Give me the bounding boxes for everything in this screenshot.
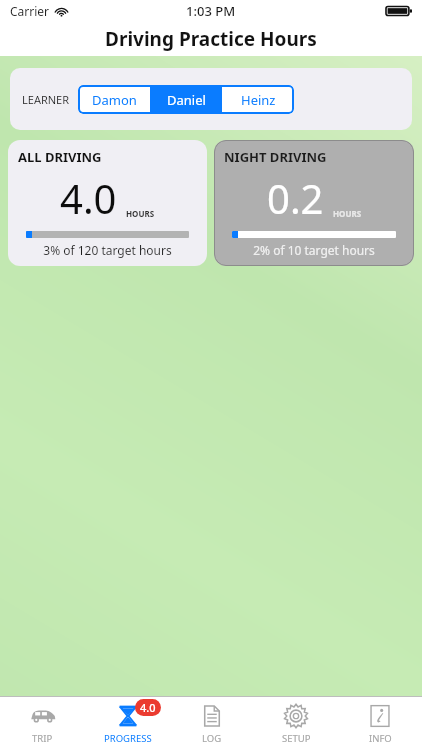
button[interactable]: Heinz — [222, 85, 294, 114]
staticText: 4.0 — [60, 171, 117, 225]
staticText: 2% of 10 target hours — [224, 242, 404, 258]
staticText: SETUP — [282, 732, 311, 745]
button[interactable]: Daniel — [150, 85, 222, 114]
button[interactable]: Setup — [254, 697, 338, 750]
button[interactable]: Info — [338, 697, 422, 750]
button[interactable]: Log — [170, 697, 254, 750]
staticText: Carrier — [10, 3, 50, 19]
staticText: PROGRESS — [104, 732, 152, 745]
staticText: Daniel — [167, 91, 206, 109]
staticText: ALL DRIVING — [18, 148, 102, 166]
staticText: LOG — [202, 732, 222, 745]
staticText: Driving Practice Hours — [105, 26, 317, 52]
staticText: NIGHT DRIVING — [224, 148, 327, 166]
button[interactable]: Progress — [85, 697, 170, 750]
staticText: INFO — [369, 732, 392, 745]
button[interactable]: Trip — [0, 697, 85, 750]
staticText: Heinz — [241, 91, 276, 109]
staticText: 0.2 — [267, 171, 324, 225]
button[interactable]: Damon — [78, 85, 150, 114]
staticText: Damon — [92, 91, 137, 109]
staticText: 3% of 120 target hours — [18, 242, 197, 258]
staticText: 4.0 — [140, 700, 156, 715]
staticText: 1:03 PM — [186, 2, 236, 20]
staticText: HOURS — [126, 208, 155, 219]
button[interactable]: NIGHT DRIVING — [214, 140, 414, 266]
staticText: TRIP — [32, 732, 53, 745]
staticText: LEARNER — [22, 92, 70, 107]
button[interactable]: ALL DRIVING — [8, 140, 207, 266]
staticText: HOURS — [333, 208, 362, 219]
